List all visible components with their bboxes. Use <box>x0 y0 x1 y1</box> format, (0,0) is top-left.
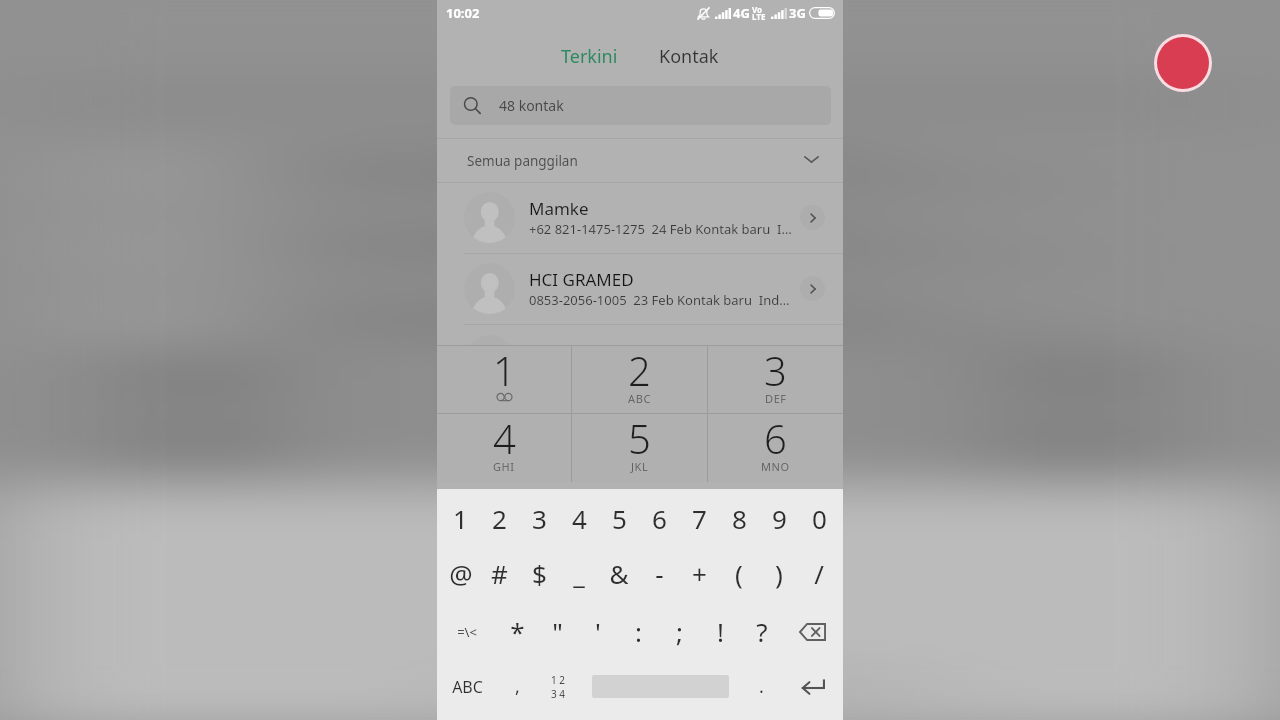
staticText: & <box>609 556 629 591</box>
staticText: 10:02 <box>446 4 480 22</box>
button[interactable]: Enter <box>782 659 843 714</box>
staticText: Semua panggilan <box>467 152 578 170</box>
button[interactable]: ! <box>700 604 741 659</box>
button[interactable]: Kontak <box>640 31 738 82</box>
staticText: 6 <box>764 411 787 465</box>
staticText: Mamke <box>529 197 589 220</box>
staticText: : <box>635 614 642 649</box>
button[interactable]: Terkini <box>542 31 637 82</box>
staticText: , <box>515 674 520 699</box>
staticText: _ <box>573 556 585 591</box>
staticText: 4 <box>572 501 587 536</box>
staticText: $ <box>532 556 547 591</box>
staticText: 4G <box>733 4 750 22</box>
button[interactable]: 3 <box>519 490 559 546</box>
staticText: 7 <box>692 501 707 536</box>
button[interactable]: =\< <box>437 604 497 659</box>
button[interactable]: ? <box>741 604 782 659</box>
staticText: 3 <box>532 501 547 536</box>
button[interactable]: # <box>480 546 519 601</box>
staticText: 0 <box>812 501 827 536</box>
button[interactable]: ABC <box>437 659 497 714</box>
button[interactable]: ( <box>719 546 759 601</box>
button[interactable]: 8 <box>719 490 759 546</box>
button[interactable]: & <box>599 546 639 601</box>
button[interactable]: * <box>497 604 537 659</box>
staticText: 1 <box>493 343 516 397</box>
staticText: ' <box>595 614 601 649</box>
staticText: 2 <box>628 343 651 397</box>
button[interactable]: Call details <box>800 205 825 230</box>
button[interactable]: Backspace <box>782 604 843 659</box>
staticText: ( <box>735 556 743 591</box>
button[interactable]: 48 kontak <box>450 86 831 125</box>
staticText: JKL <box>631 459 649 474</box>
button[interactable]: HCI GRAMED <box>437 258 843 318</box>
button[interactable]: 1 <box>441 490 480 546</box>
button[interactable]: Mamke <box>437 187 843 247</box>
button[interactable]: 6 <box>708 414 843 482</box>
staticText: 9 <box>772 501 787 536</box>
staticText: 3 <box>764 343 787 397</box>
staticText: " <box>552 614 563 649</box>
staticText: ABC <box>628 391 651 406</box>
staticText: ABC <box>452 676 483 698</box>
button[interactable]: $ <box>519 546 559 601</box>
staticText: . <box>759 674 764 699</box>
button[interactable]: 4 <box>559 490 599 546</box>
staticText: =\< <box>457 623 477 641</box>
staticText: 5 <box>628 411 651 465</box>
button[interactable]: ' <box>577 604 618 659</box>
button[interactable]: 1 <box>437 346 571 413</box>
staticText: 2 <box>492 501 507 536</box>
button[interactable]: 2 <box>480 490 519 546</box>
staticText: 5 <box>612 501 627 536</box>
staticText: ) <box>775 556 783 591</box>
button[interactable]: 9 <box>759 490 799 546</box>
staticText: MNO <box>761 459 790 474</box>
staticText: 8 <box>732 501 747 536</box>
button[interactable]: 2 <box>572 346 707 413</box>
button[interactable]: . <box>741 659 782 714</box>
button[interactable]: " <box>537 604 577 659</box>
staticText: Diana <box>529 341 576 364</box>
button[interactable]: / <box>799 546 839 601</box>
button[interactable]: 7 <box>679 490 719 546</box>
button[interactable]: Numbers <box>538 659 579 714</box>
staticText: ? <box>756 614 768 649</box>
button[interactable]: ) <box>759 546 799 601</box>
button[interactable]: + <box>679 546 719 601</box>
staticText: + <box>692 556 707 591</box>
button[interactable]: - <box>639 546 679 601</box>
button[interactable]: 5 <box>599 490 639 546</box>
button[interactable]: 3 <box>708 346 843 413</box>
staticText: 6 <box>652 501 667 536</box>
button[interactable]: : <box>618 604 659 659</box>
staticText: / <box>814 556 824 591</box>
button[interactable]: _ <box>559 546 599 601</box>
staticText: 1 <box>453 501 468 536</box>
staticText: Terkini <box>561 44 618 69</box>
staticText: 1 2 <box>551 673 566 687</box>
staticText: DEF <box>765 391 787 406</box>
staticText: GHI <box>493 459 515 474</box>
staticText: LTE <box>752 11 766 22</box>
staticText: * <box>510 614 525 649</box>
button[interactable]: Call details <box>800 276 825 301</box>
staticText: - <box>655 556 664 591</box>
staticText: +62 821-1475-1275 24 Feb Kontak baru I… <box>529 220 792 238</box>
button[interactable]: 4 <box>437 414 571 482</box>
button[interactable]: 0 <box>799 490 839 546</box>
staticText: 3G <box>789 4 806 22</box>
button[interactable]: 6 <box>639 490 679 546</box>
button[interactable]: , <box>497 659 538 714</box>
staticText: # <box>491 556 508 591</box>
button[interactable]: Semua panggilan <box>437 139 843 182</box>
button[interactable]: ; <box>659 604 700 659</box>
staticText: @ <box>449 556 473 591</box>
staticText: ! <box>717 614 724 649</box>
button[interactable]: @ <box>441 546 480 601</box>
button[interactable]: 5 <box>572 414 707 482</box>
button[interactable]: Stop recording <box>1157 37 1209 89</box>
